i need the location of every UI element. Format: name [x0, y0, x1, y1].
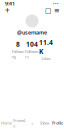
button[interactable]: 8: [11, 40, 25, 59]
staticText: 104: [26, 40, 38, 49]
staticText: □: [45, 7, 51, 14]
button[interactable]: Add friends: [4, 7, 11, 14]
staticText: Home: [1, 120, 12, 126]
button[interactable]: Menu: [54, 7, 60, 13]
staticText: 9:41: [5, 0, 15, 7]
staticText: @username: [17, 29, 47, 36]
staticText: +: [5, 5, 10, 16]
button[interactable]: Share profile: [45, 7, 51, 13]
button[interactable]: 104: [25, 40, 39, 59]
staticText: Following: [11, 49, 24, 59]
staticText: Inbox: [40, 120, 49, 126]
staticText: Profile: [52, 120, 63, 126]
staticText: Friends: [13, 118, 25, 128]
staticText: 11.4K: [39, 38, 53, 56]
staticText: Likes: [41, 56, 50, 61]
staticText: 8: [16, 40, 20, 49]
staticText: +: [31, 120, 33, 126]
staticText: Followers: [25, 49, 39, 59]
button[interactable]: 11.4K: [39, 38, 53, 61]
staticText: •••: [53, 1, 59, 6]
staticText: ≡: [54, 7, 60, 14]
